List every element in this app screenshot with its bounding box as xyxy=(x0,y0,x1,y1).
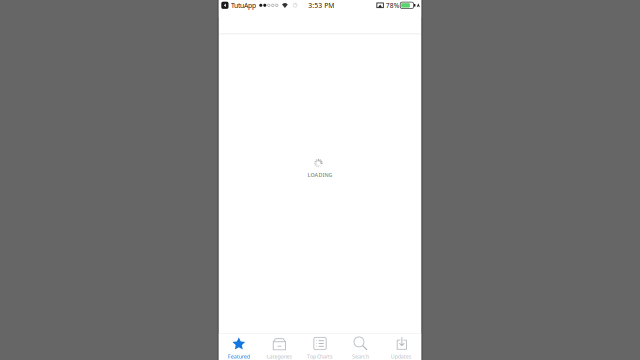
staticText: Categories xyxy=(266,353,292,360)
button[interactable]: Categories xyxy=(259,334,300,360)
staticText: Top Charts xyxy=(307,353,333,360)
staticText: Featured xyxy=(228,353,250,360)
staticText: TutuApp xyxy=(231,1,256,10)
staticText: Search xyxy=(352,353,369,360)
button[interactable]: Search xyxy=(340,334,381,360)
staticText: LOADING xyxy=(307,171,332,178)
staticText: 3:53 PM xyxy=(308,1,334,10)
button[interactable]: Top Charts xyxy=(300,334,340,360)
staticText: Updates xyxy=(391,353,412,360)
button[interactable]: Featured xyxy=(218,334,259,360)
button[interactable]: Updates xyxy=(381,334,421,360)
staticText: 78% xyxy=(386,1,400,10)
